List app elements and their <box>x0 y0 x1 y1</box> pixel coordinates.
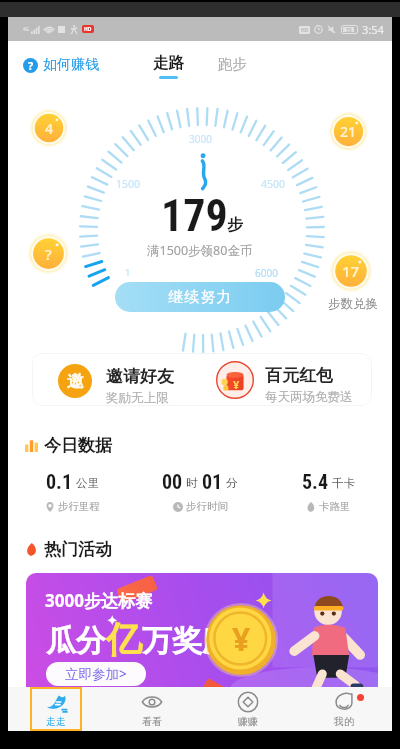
staticText: ? <box>28 58 34 73</box>
staticText: 赚赚 <box>238 715 258 728</box>
button[interactable]: 4 <box>30 109 68 147</box>
staticText: 热门活动 <box>44 539 112 560</box>
staticText: 1 <box>125 266 131 279</box>
staticText: 奖励无上限 <box>106 390 169 406</box>
button[interactable]: 赚赚 <box>200 687 296 731</box>
staticText: 我的 <box>334 715 354 728</box>
staticText: HD <box>301 27 309 34</box>
staticText: 步 <box>227 215 243 235</box>
button[interactable]: ? <box>28 233 69 274</box>
staticText: 4500 <box>261 177 286 191</box>
staticText: 0.1 <box>46 470 73 493</box>
button[interactable]: 跑步 <box>210 51 255 77</box>
staticText: 17 <box>342 261 360 281</box>
staticText: 万奖励 <box>142 622 232 660</box>
staticText: 如何赚钱 <box>43 56 99 74</box>
staticText: 走走 <box>46 715 66 728</box>
staticText: 1500 <box>116 177 141 191</box>
staticText: 邀请好友 <box>106 366 174 387</box>
button[interactable]: 我的 <box>296 687 392 731</box>
staticText: 4G <box>23 26 30 33</box>
staticText: 瓜分 <box>46 622 106 660</box>
staticText: 6000 <box>255 266 278 280</box>
staticText: 4 <box>45 119 54 138</box>
staticText: 千卡 <box>332 476 355 490</box>
staticText: 179 <box>161 190 228 242</box>
staticText: 01 <box>202 470 223 493</box>
staticText: 步行时间 <box>186 500 228 513</box>
staticText: ¥ <box>233 377 240 392</box>
staticText: ¥ <box>232 617 251 661</box>
button[interactable]: 继续努力 <box>115 282 285 312</box>
staticText: 今日数据 <box>44 435 112 456</box>
staticText: 继续努力 <box>168 288 232 307</box>
button[interactable]: ? <box>21 53 101 77</box>
staticText: 3000 <box>189 132 212 146</box>
button[interactable]: 看看 <box>104 687 200 731</box>
staticText: 分 <box>226 476 238 490</box>
button[interactable]: 17 <box>330 250 372 292</box>
staticText: 时 <box>186 476 198 490</box>
staticText: 满1500步领80金币 <box>147 242 253 259</box>
staticText: 21 <box>340 122 357 141</box>
staticText: 走路 <box>153 53 184 73</box>
staticText: 00 <box>162 470 183 493</box>
button[interactable]: 21 <box>329 112 368 151</box>
staticText: 公里 <box>76 476 99 490</box>
staticText: 每天两场免费送 <box>265 389 353 405</box>
staticText: 跑步 <box>218 55 247 73</box>
staticText: 百元红包 <box>265 365 333 386</box>
staticText: 5.4 <box>302 470 329 493</box>
staticText: 卡路里 <box>319 500 351 513</box>
staticText: 步行里程 <box>58 500 100 513</box>
button[interactable]: 邀 <box>58 360 174 401</box>
staticText: 73 <box>346 27 352 32</box>
button[interactable]: 走路 <box>145 49 192 83</box>
staticText: 看看 <box>142 715 162 728</box>
staticText: 3000步达标赛 <box>45 589 152 612</box>
staticText: 步数兑换 <box>328 296 378 312</box>
staticText: 邀 <box>67 371 84 392</box>
staticText: 亿 <box>106 617 142 662</box>
staticText: 3:54 <box>362 22 384 37</box>
button[interactable]: 立即参加> <box>46 662 146 686</box>
button[interactable]: ¥ <box>216 359 353 400</box>
button[interactable]: 3000步达标赛 <box>26 573 378 704</box>
button[interactable]: 走走 <box>8 687 104 731</box>
staticText: HD <box>84 26 92 33</box>
staticText: ? <box>45 244 52 264</box>
staticText: 立即参加> <box>65 665 127 683</box>
